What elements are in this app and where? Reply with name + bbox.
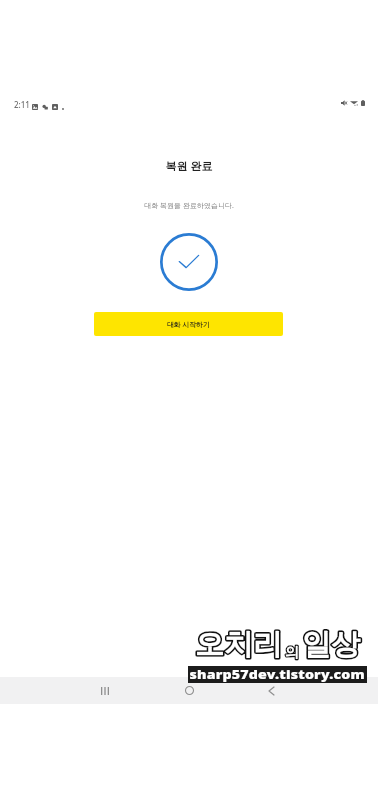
staticText: 일상 <box>302 626 360 663</box>
staticText: 의 <box>285 644 299 662</box>
button[interactable]: Home <box>169 677 209 704</box>
staticText: 복원 완료 <box>0 158 378 173</box>
staticText: 의 <box>285 644 299 662</box>
button[interactable]: Recent apps <box>85 677 125 704</box>
staticText: 대화 복원을 완료하였습니다. <box>0 201 378 211</box>
staticText: 오치리 <box>195 626 282 663</box>
button[interactable]: Back <box>251 677 291 704</box>
staticText: 일상 <box>302 626 360 663</box>
button[interactable]: 대화 시작하기 <box>94 312 283 336</box>
staticText: 대화 시작하기 <box>167 320 210 329</box>
staticText: 오치리 <box>195 626 282 663</box>
staticText: sharp57dev.tistory.com <box>190 666 365 682</box>
staticText: 2:11 <box>14 99 30 110</box>
